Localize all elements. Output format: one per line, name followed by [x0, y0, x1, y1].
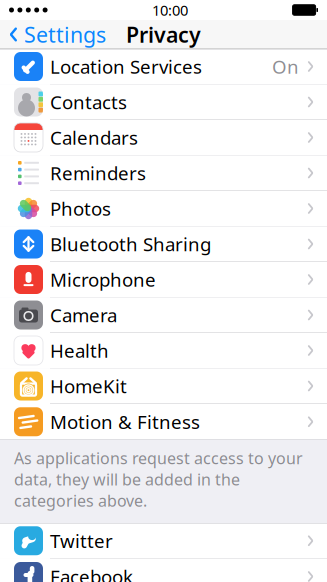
- staticText: Photos: [50, 196, 111, 221]
- button[interactable]: Microphone: [0, 262, 327, 297]
- button[interactable]: Settings: [0, 14, 106, 55]
- staticText: Health: [50, 338, 109, 363]
- button[interactable]: Calendars: [0, 120, 327, 155]
- button[interactable]: Camera: [0, 297, 327, 333]
- staticText: Motion & Fitness: [50, 409, 200, 434]
- staticText: Twitter: [50, 528, 113, 553]
- button[interactable]: Facebook: [0, 559, 327, 582]
- staticText: Bluetooth Sharing: [50, 232, 211, 256]
- staticText: Facebook: [50, 564, 133, 582]
- staticText: Calendars: [50, 125, 138, 150]
- staticText: Camera: [50, 303, 117, 327]
- staticText: Privacy: [126, 20, 201, 49]
- staticText: Settings: [24, 20, 106, 49]
- button[interactable]: Photos: [0, 191, 327, 226]
- staticText: Microphone: [50, 267, 156, 292]
- staticText: HomeKit: [50, 374, 127, 398]
- staticText: Contacts: [50, 90, 127, 114]
- staticText: 10:00: [152, 0, 188, 20]
- staticText: On: [272, 54, 299, 79]
- button[interactable]: Health: [0, 333, 327, 368]
- button[interactable]: Bluetooth Sharing: [0, 226, 327, 262]
- staticText: Location Services: [50, 54, 202, 79]
- staticText: Reminders: [50, 161, 146, 185]
- button[interactable]: Motion & Fitness: [0, 404, 327, 439]
- staticText: As applications request access to your d…: [14, 447, 303, 511]
- button[interactable]: Twitter: [0, 523, 327, 559]
- button[interactable]: Contacts: [0, 84, 327, 120]
- button[interactable]: Location Services: [0, 49, 327, 84]
- button[interactable]: Reminders: [0, 155, 327, 191]
- button[interactable]: HomeKit: [0, 368, 327, 404]
